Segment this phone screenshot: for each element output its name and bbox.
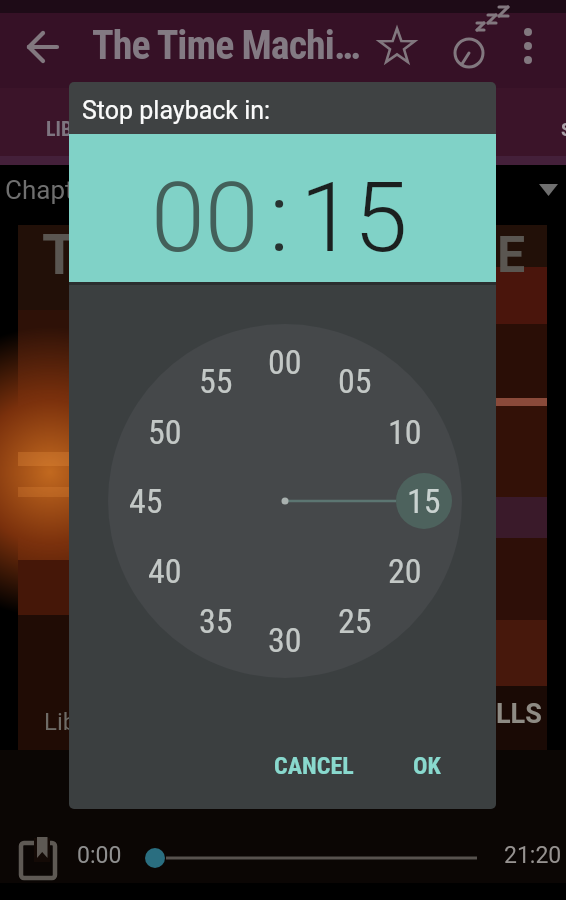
staticText: 50 (148, 412, 182, 452)
staticText: OK (413, 752, 441, 780)
staticText: Libr (44, 708, 85, 736)
staticText: 00 (268, 342, 302, 382)
button[interactable]: OK (398, 745, 456, 787)
button[interactable]: LIB (0, 88, 69, 156)
staticText: 00 (151, 161, 259, 275)
button[interactable]: SE (520, 88, 566, 156)
button[interactable] (501, 20, 557, 76)
staticText: 15 (300, 161, 408, 275)
button[interactable] (130, 836, 490, 880)
staticText: 20 (388, 551, 422, 591)
staticText: The Time Machi… (92, 22, 360, 69)
staticText: 45 (129, 481, 163, 521)
staticText: CANCEL (274, 752, 354, 780)
staticText: Stop playback in: (82, 96, 271, 125)
staticText: 55 (199, 361, 233, 401)
staticText: LIB (46, 117, 73, 140)
staticText: 10 (388, 412, 422, 452)
staticText: 30 (268, 620, 302, 660)
staticText: 35 (199, 601, 233, 641)
staticText: 25 (338, 601, 372, 641)
button[interactable]: CANCEL (258, 745, 370, 787)
staticText: 21:20 (504, 842, 562, 869)
staticText: 15 (407, 481, 441, 521)
staticText: E (497, 226, 526, 285)
staticText: SE (561, 118, 566, 140)
button[interactable]: Chapt (0, 168, 566, 210)
button[interactable] (369, 20, 425, 76)
button[interactable] (14, 836, 60, 882)
staticText: LLS (496, 698, 542, 730)
staticText: 40 (148, 551, 182, 591)
button[interactable] (14, 20, 70, 76)
button[interactable] (441, 20, 497, 76)
staticText: Chapt (5, 175, 74, 205)
staticText: : (269, 161, 290, 275)
staticText: T (42, 222, 77, 288)
staticText: 0:00 (77, 842, 122, 869)
staticText: 05 (338, 361, 372, 401)
